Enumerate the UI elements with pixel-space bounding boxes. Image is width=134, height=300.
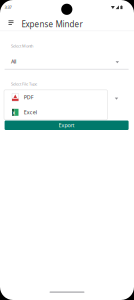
staticText: Select File Type [11, 81, 37, 86]
staticText: Expense Minder [22, 19, 83, 29]
button[interactable]: Export [5, 120, 129, 130]
staticText: PDF [24, 94, 34, 101]
button[interactable]: X [4, 105, 107, 120]
button[interactable]: Open navigation menu [8, 20, 13, 25]
staticText: All [11, 58, 16, 65]
staticText: Export [59, 122, 75, 129]
staticText: X [12, 110, 15, 116]
staticText: Excel [24, 109, 37, 116]
staticText: Select Month [11, 43, 33, 49]
button[interactable]: All [5, 55, 129, 69]
staticText: 3:37 [5, 5, 12, 10]
button[interactable]: PDF [4, 90, 107, 105]
